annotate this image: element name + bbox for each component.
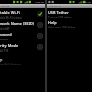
button[interactable]: Toggle Wi-Fi hotspot	[35, 8, 44, 19]
staticText: USB Tether	[49, 5, 61, 8]
button[interactable]: p	[0, 55, 45, 65]
button[interactable]: Configure	[35, 30, 44, 41]
staticText: table Wi-Fi Hotspot	[0, 10, 35, 15]
staticText: Help	[48, 20, 57, 25]
button[interactable]: table Wi-Fi Hotspot	[0, 8, 45, 19]
staticText: 10:32 AM	[35, 1, 44, 4]
button[interactable]: USB Tether	[47, 8, 92, 18]
staticText: p	[0, 57, 3, 62]
staticText: sword	[0, 32, 12, 37]
staticText: droidAP	[0, 27, 10, 30]
button[interactable]: sword	[0, 30, 45, 41]
button[interactable]: work Name (SSID)	[0, 19, 45, 30]
staticText: Help using USB Tether	[48, 26, 76, 28]
staticText: Turn on USB tether	[48, 16, 72, 18]
button[interactable]: Configure	[35, 19, 44, 30]
staticText: 9:41 AM	[83, 1, 91, 4]
staticText: ing Wi-Fi Hotspot	[0, 63, 21, 65]
button[interactable]: rity Mode	[0, 41, 45, 52]
staticText: USB Tether	[48, 10, 69, 15]
staticText: work Name (SSID)	[0, 21, 34, 26]
button[interactable]: Configure	[35, 41, 44, 52]
staticText: able Wi-Fi hotspot	[0, 16, 22, 19]
staticText: ••••••••	[0, 38, 8, 41]
staticText: thering	[1, 5, 10, 8]
staticText: rity Mode	[0, 43, 19, 48]
button[interactable]: Help	[47, 18, 92, 28]
staticText: A2 PSK	[0, 49, 9, 52]
